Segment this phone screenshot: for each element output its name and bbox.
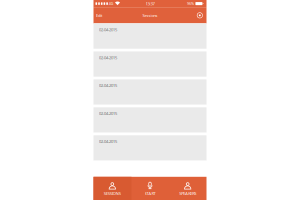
button[interactable]: 02-04-2015	[93, 107, 206, 133]
staticText: Sessions	[142, 13, 157, 18]
button[interactable]: 02-04-2015	[93, 23, 206, 49]
staticText: SPEAKERS	[179, 191, 196, 196]
button[interactable]: 02-04-2015	[93, 79, 206, 105]
button[interactable]: SPEAKERS	[169, 177, 206, 200]
button[interactable]: 02-04-2015	[93, 135, 206, 161]
staticText: 02-04-2015	[99, 139, 117, 144]
staticText: 02-04-2015	[99, 83, 117, 88]
staticText: SESSIONS	[104, 191, 121, 196]
staticText: 96%	[187, 1, 194, 6]
button[interactable]: SESSIONS	[93, 177, 131, 200]
staticText: 13:37	[145, 1, 154, 6]
staticText: 4G	[109, 1, 114, 6]
button[interactable]: Edit	[93, 7, 102, 23]
button[interactable]: 02-04-2015	[93, 51, 206, 77]
staticText: 02-04-2015	[99, 55, 117, 60]
staticText: 02-04-2015	[99, 27, 117, 32]
staticText: 02-04-2015	[99, 111, 117, 116]
button[interactable]: START	[131, 177, 169, 200]
button[interactable]: Record	[196, 7, 206, 23]
staticText: Edit	[96, 13, 102, 18]
staticText: START	[144, 191, 155, 196]
